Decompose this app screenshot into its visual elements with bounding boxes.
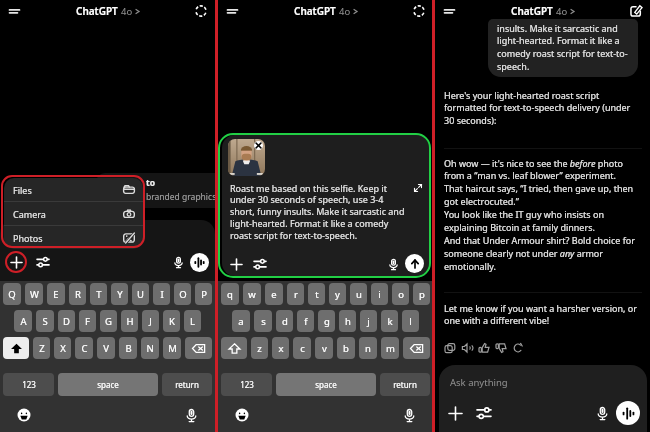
button[interactable]: X xyxy=(54,337,71,359)
button[interactable]: G xyxy=(100,310,117,332)
button[interactable]: ChatGPT xyxy=(511,4,575,18)
button[interactable]: Add xyxy=(444,402,466,424)
button[interactable]: j xyxy=(360,310,377,332)
button[interactable]: 123 xyxy=(221,373,272,396)
button[interactable]: s xyxy=(254,310,272,332)
button[interactable]: Menu xyxy=(439,1,459,21)
button[interactable]: Shift xyxy=(3,337,29,359)
button[interactable]: x xyxy=(272,337,289,359)
button[interactable]: H xyxy=(121,310,138,332)
button[interactable]: Dictate xyxy=(168,252,188,272)
button[interactable]: V xyxy=(97,337,115,359)
button[interactable]: Tools xyxy=(251,255,269,273)
button[interactable]: Shift xyxy=(221,337,247,359)
button[interactable]: Y xyxy=(111,283,128,305)
staticText: l xyxy=(409,315,412,328)
button[interactable]: Files xyxy=(4,178,143,201)
button[interactable]: t xyxy=(308,283,325,305)
button[interactable]: Copy xyxy=(441,339,458,356)
button[interactable]: Q xyxy=(3,283,21,305)
button[interactable]: Add xyxy=(6,252,26,272)
staticText: j xyxy=(367,315,370,328)
button[interactable]: New chat xyxy=(627,2,645,20)
button[interactable]: k xyxy=(381,310,398,332)
button[interactable]: I xyxy=(153,283,170,305)
button[interactable]: Emoji xyxy=(233,406,251,424)
button[interactable]: Remove image xyxy=(254,141,263,150)
button[interactable]: r xyxy=(287,283,304,305)
button[interactable]: a xyxy=(232,310,250,332)
button[interactable]: e xyxy=(265,283,283,305)
button[interactable]: A xyxy=(14,310,32,332)
button[interactable]: Voice mode xyxy=(616,401,640,425)
button[interactable]: Send xyxy=(405,254,424,273)
button[interactable]: m xyxy=(381,337,399,359)
button[interactable]: Expand xyxy=(413,183,423,193)
button[interactable]: W xyxy=(25,283,43,305)
button[interactable]: O xyxy=(174,283,191,305)
button[interactable]: h xyxy=(339,310,356,332)
button[interactable]: M xyxy=(163,337,181,359)
button[interactable]: Dictate xyxy=(591,402,613,424)
button[interactable]: ChatGPT xyxy=(76,4,140,18)
button[interactable]: Temporary chat xyxy=(192,2,210,20)
button[interactable]: R xyxy=(69,283,86,305)
button[interactable]: P xyxy=(195,283,212,305)
button[interactable]: N xyxy=(141,337,159,359)
button[interactable]: l xyxy=(402,310,419,332)
button[interactable]: Voice input xyxy=(182,406,200,424)
button[interactable]: Camera xyxy=(4,202,143,225)
button[interactable]: space xyxy=(58,373,158,396)
button[interactable]: L xyxy=(184,310,201,332)
button[interactable]: return xyxy=(162,373,212,396)
button[interactable]: space xyxy=(276,373,376,396)
button[interactable]: Tools xyxy=(473,402,495,424)
button[interactable]: z xyxy=(251,337,268,359)
button[interactable]: Read aloud xyxy=(458,339,475,356)
button[interactable]: Photos xyxy=(4,226,143,249)
button[interactable]: S xyxy=(36,310,54,332)
button[interactable]: Voice mode xyxy=(190,253,209,272)
button[interactable]: Good response xyxy=(475,339,492,356)
button[interactable]: g xyxy=(318,310,335,332)
button[interactable]: Voice input xyxy=(400,406,418,424)
button[interactable]: q xyxy=(221,283,239,305)
button[interactable]: f xyxy=(297,310,314,332)
button[interactable]: v xyxy=(315,337,333,359)
button[interactable]: u xyxy=(350,283,367,305)
button[interactable]: E xyxy=(47,283,65,305)
button[interactable]: Add xyxy=(227,255,245,273)
staticText: Camera xyxy=(13,208,46,220)
button[interactable]: F xyxy=(79,310,96,332)
button[interactable]: n xyxy=(359,337,377,359)
button[interactable]: d xyxy=(276,310,293,332)
button[interactable]: Menu xyxy=(222,1,242,21)
button[interactable]: K xyxy=(163,310,180,332)
button[interactable]: Menu xyxy=(4,1,24,21)
button[interactable]: Backspace xyxy=(403,337,430,359)
button[interactable]: o xyxy=(392,283,409,305)
button[interactable]: B xyxy=(119,337,137,359)
button[interactable]: J xyxy=(142,310,159,332)
button[interactable]: i xyxy=(371,283,388,305)
button[interactable]: C xyxy=(75,337,93,359)
button[interactable]: Regenerate xyxy=(509,339,526,356)
button[interactable]: Emoji xyxy=(15,406,33,424)
button[interactable]: 123 xyxy=(3,373,54,396)
button[interactable]: U xyxy=(132,283,149,305)
button[interactable]: Bad response xyxy=(492,339,509,356)
button[interactable]: b xyxy=(337,337,355,359)
button[interactable]: Backspace xyxy=(185,337,212,359)
button[interactable]: p xyxy=(413,283,430,305)
button[interactable]: D xyxy=(58,310,75,332)
button[interactable]: w xyxy=(243,283,261,305)
button[interactable]: Tools xyxy=(33,252,53,272)
button[interactable]: c xyxy=(293,337,311,359)
button[interactable]: Temporary chat xyxy=(410,2,428,20)
button[interactable]: ChatGPT xyxy=(294,4,358,18)
button[interactable]: return xyxy=(380,373,430,396)
button[interactable]: T xyxy=(90,283,107,305)
button[interactable]: Dictate xyxy=(384,255,402,273)
button[interactable]: Z xyxy=(33,337,50,359)
button[interactable]: y xyxy=(329,283,346,305)
